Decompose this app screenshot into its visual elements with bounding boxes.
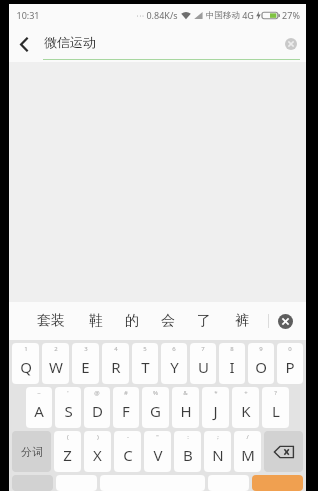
staticText: 1: [24, 345, 28, 353]
staticText: R: [111, 357, 121, 377]
button[interactable]: :: [174, 431, 201, 472]
staticText: 的: [125, 312, 139, 330]
staticText: 4: [114, 345, 118, 353]
button[interactable]: 4: [102, 343, 129, 384]
button[interactable]: 0: [277, 343, 303, 384]
button[interactable]: 分词: [12, 431, 51, 472]
staticText: D: [92, 401, 103, 421]
button[interactable]: ": [144, 431, 171, 472]
staticText: #: [124, 389, 128, 397]
staticText: 27%: [282, 9, 300, 21]
staticText: @: [94, 389, 100, 397]
button[interactable]: (: [54, 431, 81, 472]
staticText: 套装: [37, 312, 65, 330]
button[interactable]: ~: [26, 387, 52, 428]
staticText: 会: [161, 312, 175, 330]
staticText: S: [64, 401, 73, 421]
button[interactable]: 裤: [222, 302, 262, 340]
button[interactable]: &: [172, 387, 199, 428]
staticText: 9: [259, 345, 263, 353]
button[interactable]: 3: [72, 343, 99, 384]
staticText: &: [183, 389, 188, 397]
button[interactable]: 套装: [23, 302, 78, 340]
button[interactable]: ;: [204, 431, 231, 472]
staticText: C: [123, 445, 133, 465]
staticText: 3: [84, 345, 88, 353]
button[interactable]: [252, 475, 303, 491]
staticText: Q: [20, 357, 32, 377]
button[interactable]: ): [84, 431, 111, 472]
staticText: /: [246, 433, 249, 441]
button[interactable]: 8: [219, 343, 245, 384]
staticText: 6: [172, 345, 176, 353]
button[interactable]: @: [84, 387, 110, 428]
button[interactable]: 鞋: [78, 302, 114, 340]
staticText: U: [198, 357, 209, 377]
button[interactable]: Close candidates: [272, 308, 298, 334]
staticText: X: [93, 445, 102, 465]
staticText: F: [122, 401, 130, 421]
staticText: +: [244, 389, 248, 397]
button[interactable]: 7: [190, 343, 216, 384]
staticText: I: [229, 357, 235, 377]
button[interactable]: Clear text: [279, 32, 303, 56]
staticText: M: [241, 445, 255, 465]
staticText: Y: [170, 357, 179, 377]
staticText: K: [241, 401, 251, 421]
staticText: 0.84K/s: [146, 9, 178, 21]
staticText: ;: [217, 433, 219, 441]
staticText: 了: [197, 312, 211, 330]
button[interactable]: Back: [9, 29, 39, 59]
button[interactable]: ': [55, 387, 81, 428]
button[interactable]: 9: [248, 343, 274, 384]
staticText: ': [67, 389, 69, 397]
button[interactable]: 2: [42, 343, 69, 384]
staticText: 裤: [235, 312, 249, 330]
staticText: H: [180, 401, 192, 421]
button[interactable]: %: [142, 387, 169, 428]
button[interactable]: -: [114, 431, 141, 472]
staticText: N: [212, 445, 224, 465]
staticText: *: [214, 389, 218, 397]
button[interactable]: 5: [132, 343, 158, 384]
staticText: L: [272, 401, 280, 421]
staticText: V: [153, 445, 163, 465]
staticText: 鞋: [89, 312, 103, 330]
button[interactable]: /: [234, 431, 261, 472]
staticText: 2: [54, 345, 58, 353]
staticText: 10:31: [16, 9, 40, 21]
staticText: ~: [37, 389, 41, 397]
staticText: 0: [288, 345, 292, 353]
button[interactable]: ?: [262, 387, 289, 428]
staticText: 8: [230, 345, 234, 353]
staticText: %: [153, 389, 158, 397]
button[interactable]: 了: [186, 302, 222, 340]
staticText: ): [97, 433, 99, 441]
staticText: 7: [201, 345, 205, 353]
button[interactable]: 的: [114, 302, 150, 340]
button[interactable]: 6: [161, 343, 187, 384]
staticText: -: [127, 433, 129, 441]
staticText: ?: [274, 389, 277, 397]
staticText: J: [213, 401, 218, 421]
button[interactable]: 会: [150, 302, 186, 340]
staticText: 4G: [242, 9, 254, 21]
staticText: :: [187, 433, 189, 441]
staticText: Z: [63, 445, 72, 465]
staticText: G: [150, 401, 161, 421]
staticText: 分词: [21, 445, 43, 459]
button[interactable]: *: [202, 387, 229, 428]
button[interactable]: +: [232, 387, 259, 428]
staticText: A: [34, 401, 44, 421]
staticText: 中国移动: [206, 10, 240, 21]
staticText: 5: [143, 345, 147, 353]
staticText: P: [285, 357, 295, 377]
button[interactable]: 1: [12, 343, 39, 384]
button[interactable]: #: [113, 387, 139, 428]
staticText: (: [67, 433, 69, 441]
button[interactable]: Backspace: [264, 431, 303, 472]
